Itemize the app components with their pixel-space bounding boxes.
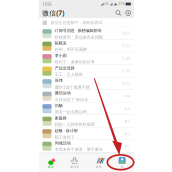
staticText: 微信运动 [55,90,71,95]
button[interactable]: 通讯录 [63,153,87,172]
staticText: 周三 [124,132,130,135]
staticText: 稿子发你了 [55,135,75,139]
staticText: 同城活动 [55,141,71,145]
staticText: 昨天 [124,95,130,98]
button[interactable]: 刘畅 [39,102,134,115]
staticText: 家庭群 [55,116,67,120]
staticText: 13:52 [121,32,130,35]
button[interactable]: 微信运动 [39,90,134,102]
staticText: 王工：已上线啦 [55,72,83,77]
staticText: 4G [105,2,109,6]
staticText: 张伟 [55,78,63,83]
button[interactable]: 我 [110,153,134,172]
button[interactable]: More [126,10,131,16]
staticText: 好的，明天见面聊 [55,47,87,52]
button[interactable]: 微信正在更新中，请稍后再试 [39,18,134,27]
staticText: 产品交流群 [55,66,75,70]
staticText: 通讯录 [70,165,79,168]
button[interactable]: 订阅号消息 · 新榜编辑部等 [39,27,134,40]
staticText: 发现 [95,165,101,168]
staticText: 10:13 [121,82,130,85]
staticText: 李小雨 [55,53,67,58]
staticText: 昨天 [124,107,130,110]
button[interactable]: 微信 [39,153,63,172]
staticText: 今日你走了 8624 步 [55,97,89,102]
staticText: 周二 [124,145,130,148]
staticText: 收到了，谢谢你的分享 [55,59,95,64]
staticText: 13:07 [121,44,130,48]
button[interactable]: 李小雨 [39,52,134,65]
staticText: 12:40 [121,57,130,60]
staticText: 陈晓东 [55,41,67,45]
staticText: 周三 [124,120,130,123]
button[interactable]: 发现 [86,153,110,172]
button[interactable]: 产品交流群 [39,65,134,77]
button[interactable]: 张伟 [39,77,134,90]
staticText: 57% [118,2,124,6]
staticText: 妈妈：记得按时吃饭哦 [55,122,95,127]
button[interactable]: 家庭群 [39,115,134,127]
staticText: 微信 [48,165,54,168]
staticText: 刘畅 [55,103,63,108]
staticText: 科技美学：新品发布会回顾 [55,35,103,39]
staticText: 微信正在更新中，请稍后再试 [50,20,102,25]
staticText: 我 [121,165,124,168]
staticText: 本周末有个展览，要不要去 [55,147,103,152]
button[interactable]: Search [116,10,121,16]
staticText: 订阅号消息 · 新榜编辑部等 [55,28,102,33]
staticText: [图片] 这个效果不错 [55,84,90,90]
button[interactable]: 同城活动 [39,140,134,152]
staticText: 周末一起去爬山吗 [55,109,87,114]
staticText: 13:56 [42,1,51,7]
button[interactable]: 陈晓东 [39,40,134,52]
staticText: 11:26 [121,69,130,73]
staticText: 赵敏 · 设计部 [55,128,78,133]
button[interactable]: 赵敏 · 设计部 [39,127,134,140]
staticText: 微信(7) [42,9,64,17]
